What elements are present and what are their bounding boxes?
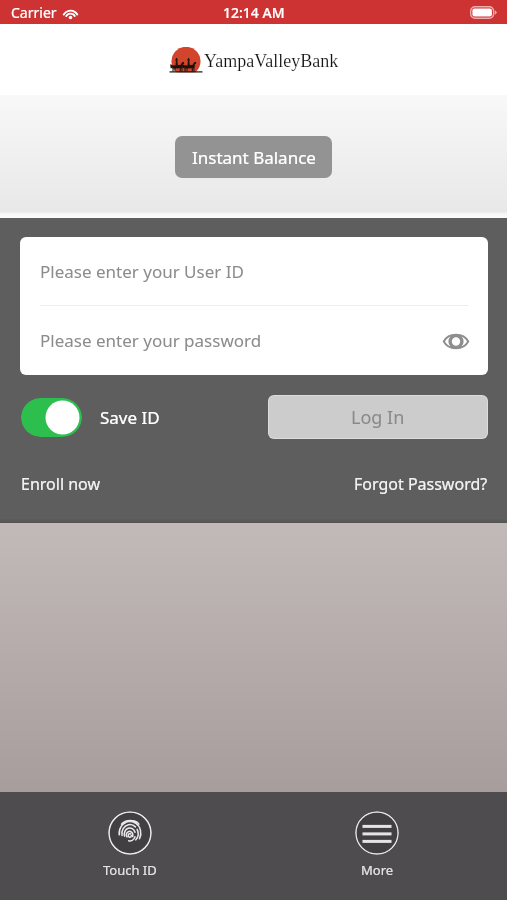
staticText: Please enter your password	[40, 329, 262, 352]
staticText: YampaValleyBank	[204, 51, 339, 71]
staticText: Please enter your User ID	[40, 260, 244, 283]
staticText: Carrier	[11, 3, 57, 22]
button[interactable]: Forgot Password?	[354, 473, 488, 495]
staticText: Save ID	[100, 406, 160, 429]
staticText: Instant Balance	[192, 146, 316, 169]
button[interactable]: Please enter your User ID	[20, 237, 488, 305]
button[interactable]: Enroll now	[21, 473, 100, 495]
button[interactable]: Touch ID	[98, 803, 162, 885]
staticText: Log In	[351, 405, 405, 430]
staticText: More	[361, 861, 394, 879]
staticText: Enroll now	[21, 473, 100, 495]
button[interactable]: Instant Balance	[175, 136, 332, 178]
staticText: 12:14 AM	[223, 3, 285, 22]
staticText: Touch ID	[103, 861, 157, 879]
button[interactable]: More	[345, 803, 409, 885]
staticText: Forgot Password?	[354, 473, 488, 495]
button[interactable]: Log In	[269, 396, 487, 438]
button[interactable]: Please enter your password	[20, 306, 488, 375]
button[interactable]: Show password	[439, 324, 473, 358]
button[interactable]: Save ID	[21, 398, 82, 437]
